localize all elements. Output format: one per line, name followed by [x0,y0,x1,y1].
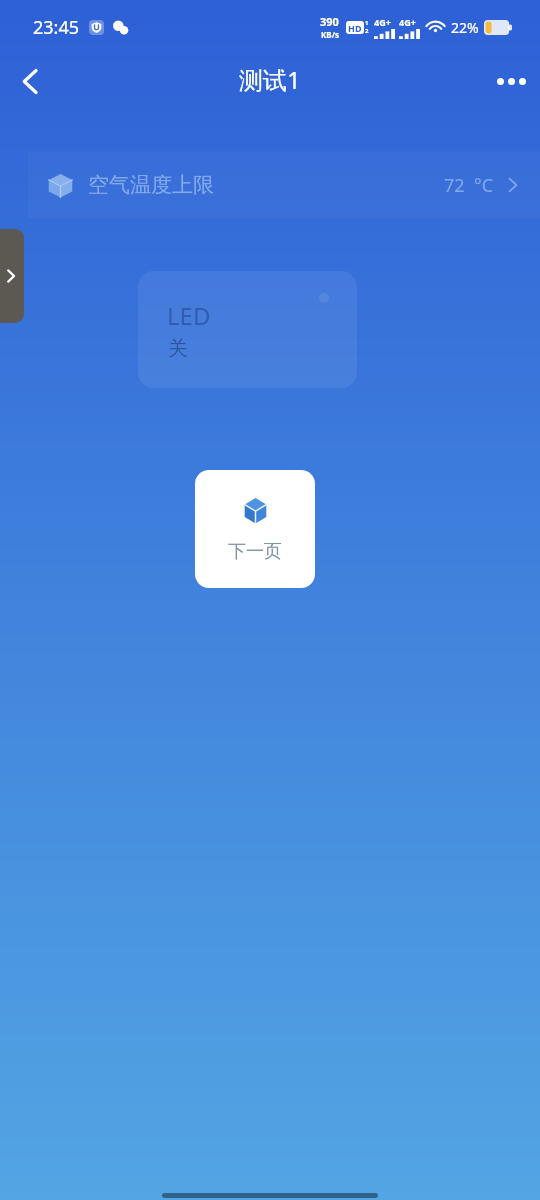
staticText: 22% [451,18,479,37]
button[interactable]: More options [489,59,533,103]
button[interactable]: 下一页 [195,470,315,588]
staticText: 测试1 [239,63,301,96]
staticText: 23:45 [33,15,80,40]
staticText: HD [348,22,362,34]
button[interactable]: LED [138,271,357,388]
staticText: KB/s [321,29,339,40]
staticText: 72 °C [444,173,494,198]
staticText: 4G+ [374,16,391,28]
staticText: 下一页 [228,540,282,563]
button[interactable]: 空气温度上限 [28,152,540,218]
staticText: 2 [365,27,369,35]
staticText: 4G+ [399,16,416,28]
button[interactable]: Open panel [0,229,24,323]
staticText: 关 [168,336,188,361]
staticText: 空气温度上限 [88,172,214,198]
staticText: 390 [320,14,339,29]
staticText: LED [167,299,211,332]
staticText: 1 [365,19,369,27]
button[interactable]: Back [8,59,52,103]
